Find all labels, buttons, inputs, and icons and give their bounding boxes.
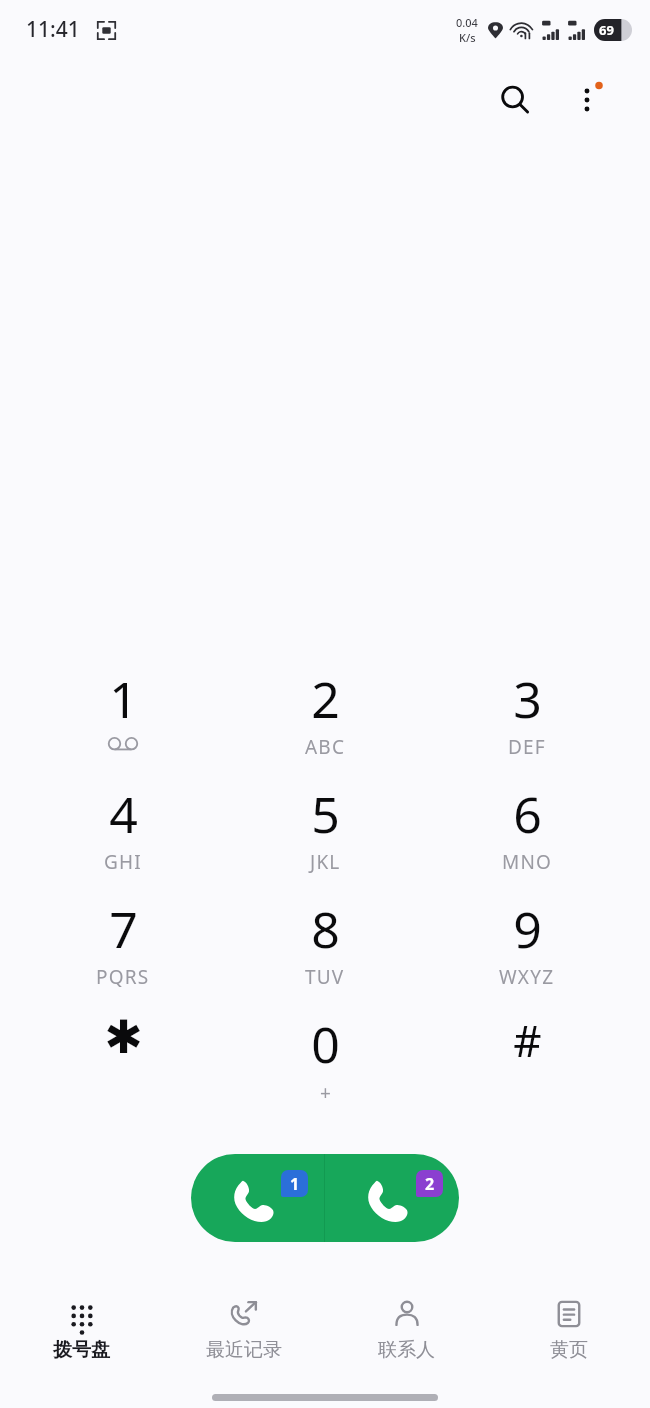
staticText: 1 <box>109 665 138 733</box>
staticText: TUV <box>305 964 345 990</box>
button[interactable]: 8 <box>224 895 426 1010</box>
staticText: 1 <box>290 1173 300 1195</box>
button[interactable]: ✱ <box>22 1010 224 1110</box>
staticText: 联系人 <box>378 1338 435 1362</box>
staticText: 3 <box>513 665 542 733</box>
button[interactable]: 黄页 <box>494 1290 644 1386</box>
button[interactable]: 7 <box>22 895 224 1010</box>
staticText: 6 <box>513 780 542 848</box>
staticText: MNO <box>502 849 553 875</box>
button[interactable]: 9 <box>426 895 628 1010</box>
button[interactable]: 0 <box>224 1010 426 1110</box>
button[interactable]: More options <box>560 73 614 127</box>
button[interactable]: 1 <box>22 665 224 780</box>
button[interactable]: # <box>426 1010 628 1110</box>
button[interactable]: Call with SIM 2 <box>325 1154 459 1242</box>
staticText: JKL <box>310 849 341 875</box>
staticText: 0 <box>311 1010 340 1078</box>
button[interactable]: 联系人 <box>331 1290 481 1386</box>
button[interactable]: 最近记录 <box>169 1290 319 1386</box>
staticText: 最近记录 <box>206 1338 282 1362</box>
staticText: ABC <box>305 734 346 760</box>
staticText: # <box>513 1010 542 1070</box>
staticText: WXYZ <box>499 964 555 990</box>
button[interactable]: 6 <box>426 780 628 895</box>
staticText: 11:41 <box>26 15 80 44</box>
button[interactable]: 拨号盘 <box>6 1290 156 1386</box>
button[interactable]: 3 <box>426 665 628 780</box>
staticText: K/s <box>459 30 476 45</box>
button[interactable]: Call with SIM 1 <box>191 1154 324 1242</box>
staticText: 69 <box>599 21 614 39</box>
staticText: 4 <box>109 780 138 848</box>
staticText: 5 <box>311 780 340 848</box>
staticText: 黄页 <box>550 1338 588 1362</box>
staticText: 2 <box>425 1173 435 1195</box>
staticText: ✱ <box>104 1010 143 1064</box>
staticText: + <box>320 1080 331 1106</box>
staticText: 7 <box>109 895 138 963</box>
button[interactable]: 5 <box>224 780 426 895</box>
staticText: 9 <box>513 895 542 963</box>
staticText: 2 <box>311 665 340 733</box>
button[interactable]: 2 <box>224 665 426 780</box>
staticText: GHI <box>104 849 142 875</box>
staticText: PQRS <box>96 964 150 990</box>
button[interactable]: 4 <box>22 780 224 895</box>
staticText: 8 <box>311 895 340 963</box>
staticText: 拨号盘 <box>53 1338 110 1362</box>
staticText: 0.04 <box>456 15 478 30</box>
staticText: DEF <box>508 734 546 760</box>
button[interactable]: Search <box>488 73 542 127</box>
